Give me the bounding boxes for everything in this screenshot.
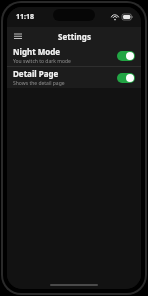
staticText: Settings: [58, 31, 91, 42]
button[interactable]: Menu: [11, 29, 25, 43]
button[interactable]: Toggle on: [117, 51, 135, 61]
staticText: You switch to dark mode: [13, 58, 71, 65]
button[interactable]: Toggle on: [117, 73, 135, 83]
button[interactable]: Night Mode: [7, 45, 141, 66]
staticText: Detail Page: [13, 68, 59, 79]
staticText: Night Mode: [13, 46, 61, 57]
staticText: Shows the detail page: [13, 80, 65, 87]
button[interactable]: Detail Page: [7, 67, 141, 88]
staticText: 11:18: [16, 12, 34, 22]
